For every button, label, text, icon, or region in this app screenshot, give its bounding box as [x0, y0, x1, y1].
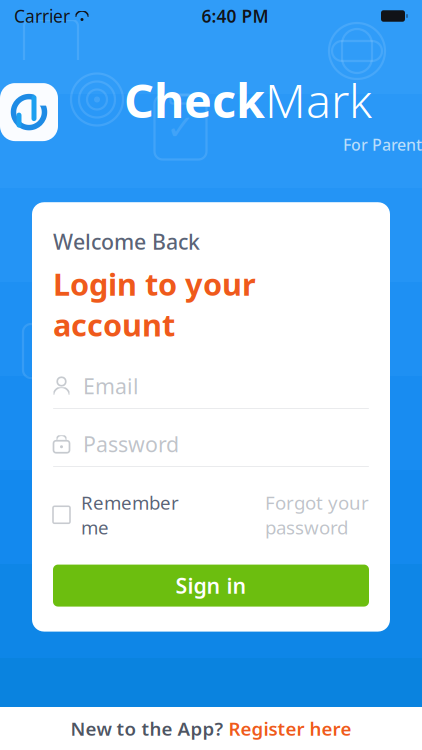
button[interactable]: Remember me	[53, 490, 179, 540]
staticText: Remember me	[81, 490, 179, 540]
staticText: Email	[83, 372, 139, 400]
staticText: New to the App?	[70, 716, 223, 741]
staticText: Password	[83, 430, 179, 458]
staticText: Carrier	[14, 4, 70, 27]
staticText: ✳	[36, 333, 63, 369]
staticText: 6:40 PM	[201, 4, 268, 27]
button[interactable]: Forgot your password	[265, 490, 369, 540]
staticText: 24	[170, 335, 200, 371]
staticText: Welcome Back	[53, 227, 200, 255]
staticText: Forgot your password	[265, 490, 369, 540]
staticText: For Parent	[343, 134, 422, 155]
staticText: Mark	[265, 69, 372, 131]
staticText: Login to your account	[53, 263, 256, 345]
button[interactable]: Sign in	[53, 565, 369, 607]
staticText: Check	[124, 69, 265, 131]
button[interactable]: Register here	[228, 716, 351, 741]
staticText: ✓	[166, 108, 195, 147]
staticText: Register here	[228, 716, 351, 741]
staticText: Sign in	[175, 571, 246, 600]
